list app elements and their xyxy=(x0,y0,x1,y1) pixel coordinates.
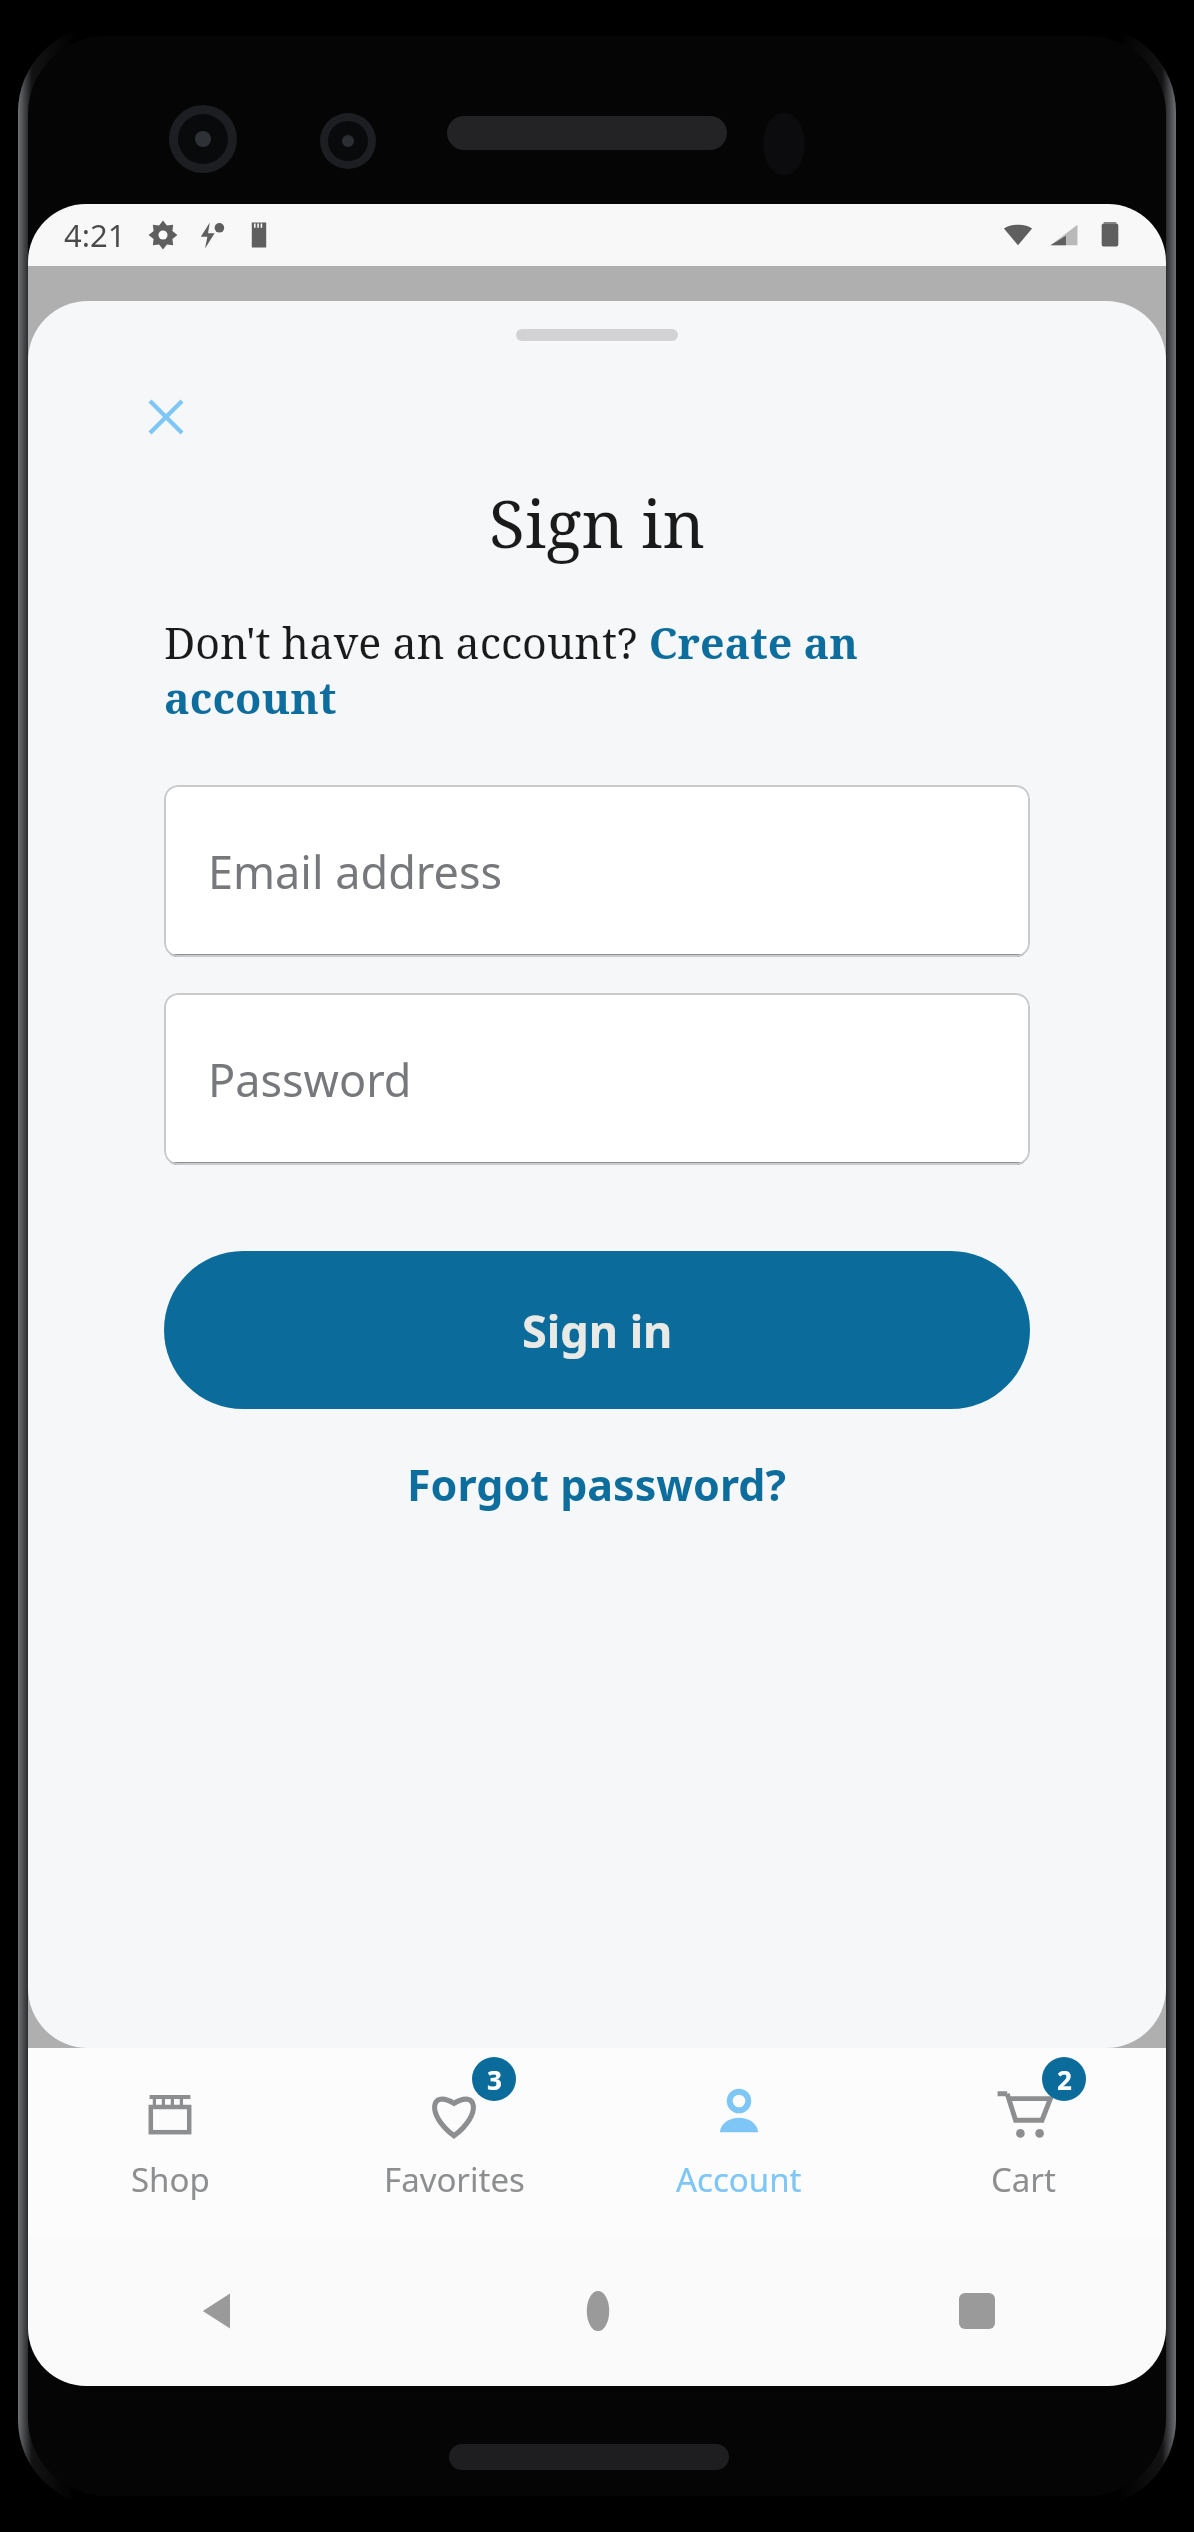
button[interactable]: 2 xyxy=(881,2048,1166,2236)
staticText: Cart xyxy=(991,2157,1056,2202)
button[interactable]: 3 xyxy=(312,2048,596,2236)
button[interactable]: Sign in xyxy=(164,1251,1030,1409)
staticText: 3 xyxy=(487,2062,502,2097)
staticText: Password xyxy=(208,1049,412,1110)
staticText: 2 xyxy=(1057,2062,1072,2097)
staticText: Account xyxy=(676,2157,802,2202)
staticText: Sign in xyxy=(28,477,1166,567)
button[interactable]: Account xyxy=(596,2048,881,2236)
staticText: 4:21 xyxy=(64,214,126,256)
staticText: Shop xyxy=(131,2157,210,2202)
staticText: Favorites xyxy=(384,2157,525,2202)
button[interactable]: Email address xyxy=(164,785,1030,957)
button[interactable]: Recents xyxy=(941,2275,1013,2347)
button[interactable]: Password xyxy=(164,993,1030,1165)
staticText: Email address xyxy=(208,841,503,902)
button[interactable]: Forgot password? xyxy=(383,1445,811,1524)
button[interactable]: Shop xyxy=(28,2048,312,2236)
button[interactable]: Back xyxy=(182,2275,254,2347)
button[interactable]: Home xyxy=(562,2275,634,2347)
staticText: Sign in xyxy=(522,1300,673,1361)
button[interactable]: Close xyxy=(134,385,198,449)
button[interactable]: Don't have an account? Create an account xyxy=(164,613,1030,727)
